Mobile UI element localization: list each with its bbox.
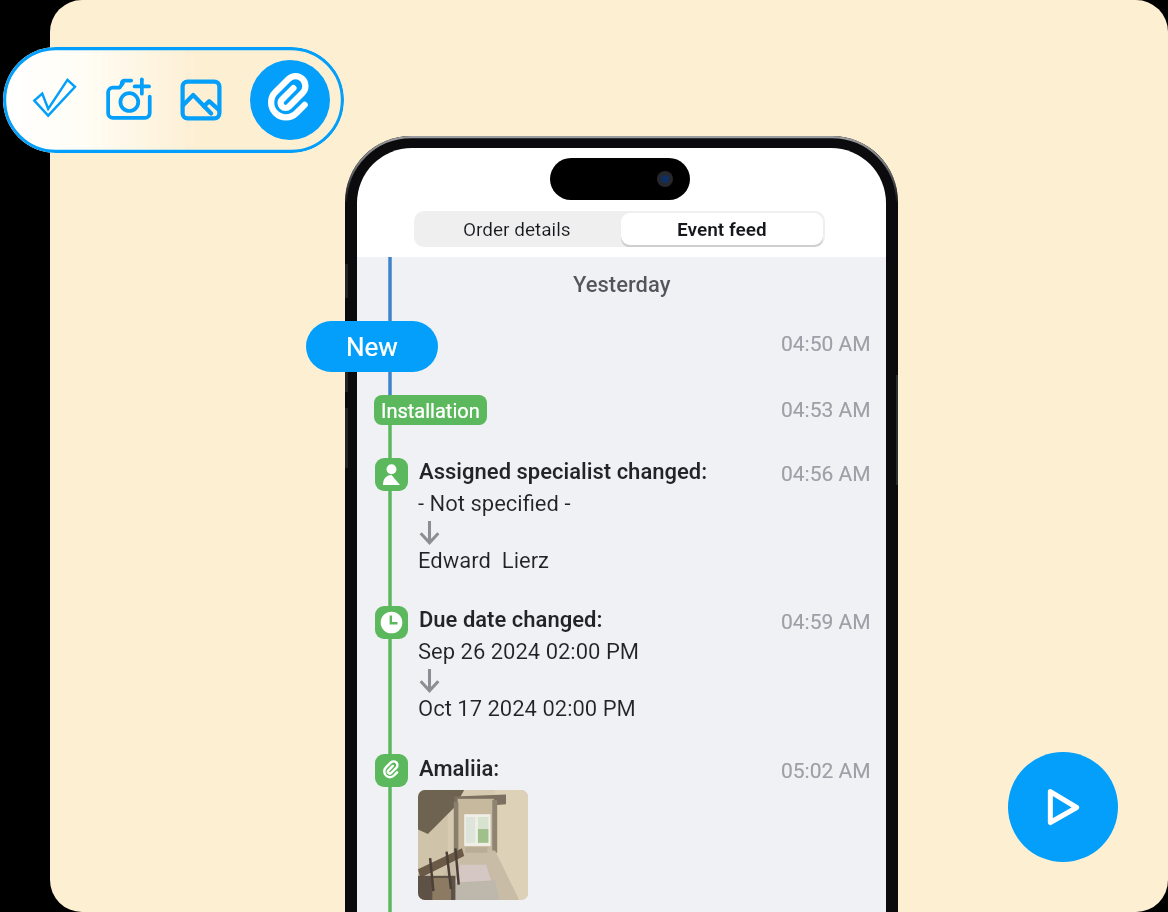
staticText: - Not specified -	[418, 491, 571, 517]
button[interactable]	[418, 790, 528, 900]
staticText: 04:53 AM	[781, 398, 871, 423]
staticText: Installation	[381, 399, 480, 422]
staticText: 05:02 AM	[781, 759, 871, 784]
staticText: Due date changed:	[419, 607, 603, 633]
button[interactable]: Attach file	[250, 60, 330, 140]
button[interactable]: Take photo	[99, 69, 159, 129]
button[interactable]: Order details	[414, 211, 619, 247]
staticText: Yesterday	[573, 272, 671, 298]
button[interactable]: Event feed	[619, 211, 825, 247]
staticText: Oct 17 2024 02:00 PM	[418, 696, 636, 722]
staticText: Amaliia:	[419, 756, 500, 782]
button[interactable]: Play	[1008, 752, 1118, 862]
staticText: 04:56 AM	[781, 462, 871, 487]
staticText: 04:50 AM	[781, 332, 871, 357]
staticText: Order details	[463, 218, 571, 240]
button[interactable]: Due date changed:	[357, 606, 886, 728]
staticText: Sep 26 2024 02:00 PM	[418, 639, 639, 665]
staticText: New	[346, 332, 398, 362]
button[interactable]: Assigned specialist changed:	[357, 458, 886, 580]
button[interactable]: Pick image	[171, 70, 231, 130]
staticText: Assigned specialist changed:	[419, 459, 708, 485]
button[interactable]: New	[306, 321, 438, 372]
button[interactable]: Mark done	[25, 70, 85, 130]
staticText: Event feed	[677, 218, 767, 240]
staticText: 04:59 AM	[781, 610, 871, 635]
staticText: Edward Lierz	[418, 548, 550, 574]
button[interactable]: Installation	[374, 395, 487, 425]
